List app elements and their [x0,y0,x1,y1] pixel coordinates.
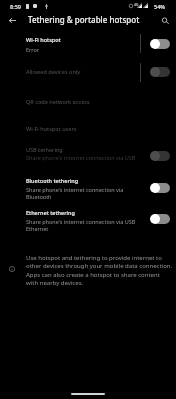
staticText: Wi-Fi hotspot [26,36,61,43]
staticText: Tethering & portable hotspot [28,14,140,25]
staticText: 4G [134,2,139,7]
staticText: Bluetooth [26,193,52,200]
staticText: other devices through your mobile data c… [26,262,173,270]
staticText: Ethernet [26,225,49,232]
staticText: Bluetooth tethering [26,177,79,184]
staticText: Error [26,46,40,53]
staticText: Allowed devices only [26,68,81,75]
button[interactable]: Search [156,12,174,30]
staticText: 54% [154,3,165,10]
staticText: Share phone's internet connection via US… [26,218,136,225]
button[interactable]: Bluetooth tethering [150,183,170,193]
button[interactable] [0,90,176,114]
button[interactable]: Allowed devices only [150,67,170,77]
staticText: Share phone's internet connection via US… [26,154,136,161]
staticText: Ethernet tethering [26,209,75,216]
button[interactable]: Ethernet tethering [150,214,170,224]
staticText: 8:59 [10,3,21,10]
staticText: with nearby devices. [26,279,84,287]
staticText: QR code network access [26,98,90,105]
button[interactable] [0,117,176,141]
button[interactable]: USB tethering [150,151,170,161]
button[interactable]: Navigate up [3,11,21,29]
staticText: Share phone's internet connection via [26,186,124,193]
button[interactable] [0,205,176,235]
button[interactable]: Wi-Fi hotspot [150,39,170,49]
staticText: Use hotspot and tethering to provide int… [26,254,162,262]
button[interactable]: More information [5,262,19,276]
button[interactable] [0,143,176,168]
staticText: Wi-Fi hotspot users [26,125,77,132]
button[interactable] [0,60,176,84]
staticText: USB tethering [26,146,63,153]
button[interactable] [0,172,176,202]
button[interactable] [0,33,176,55]
staticText: Apps can also create a hotspot to share … [26,271,160,279]
